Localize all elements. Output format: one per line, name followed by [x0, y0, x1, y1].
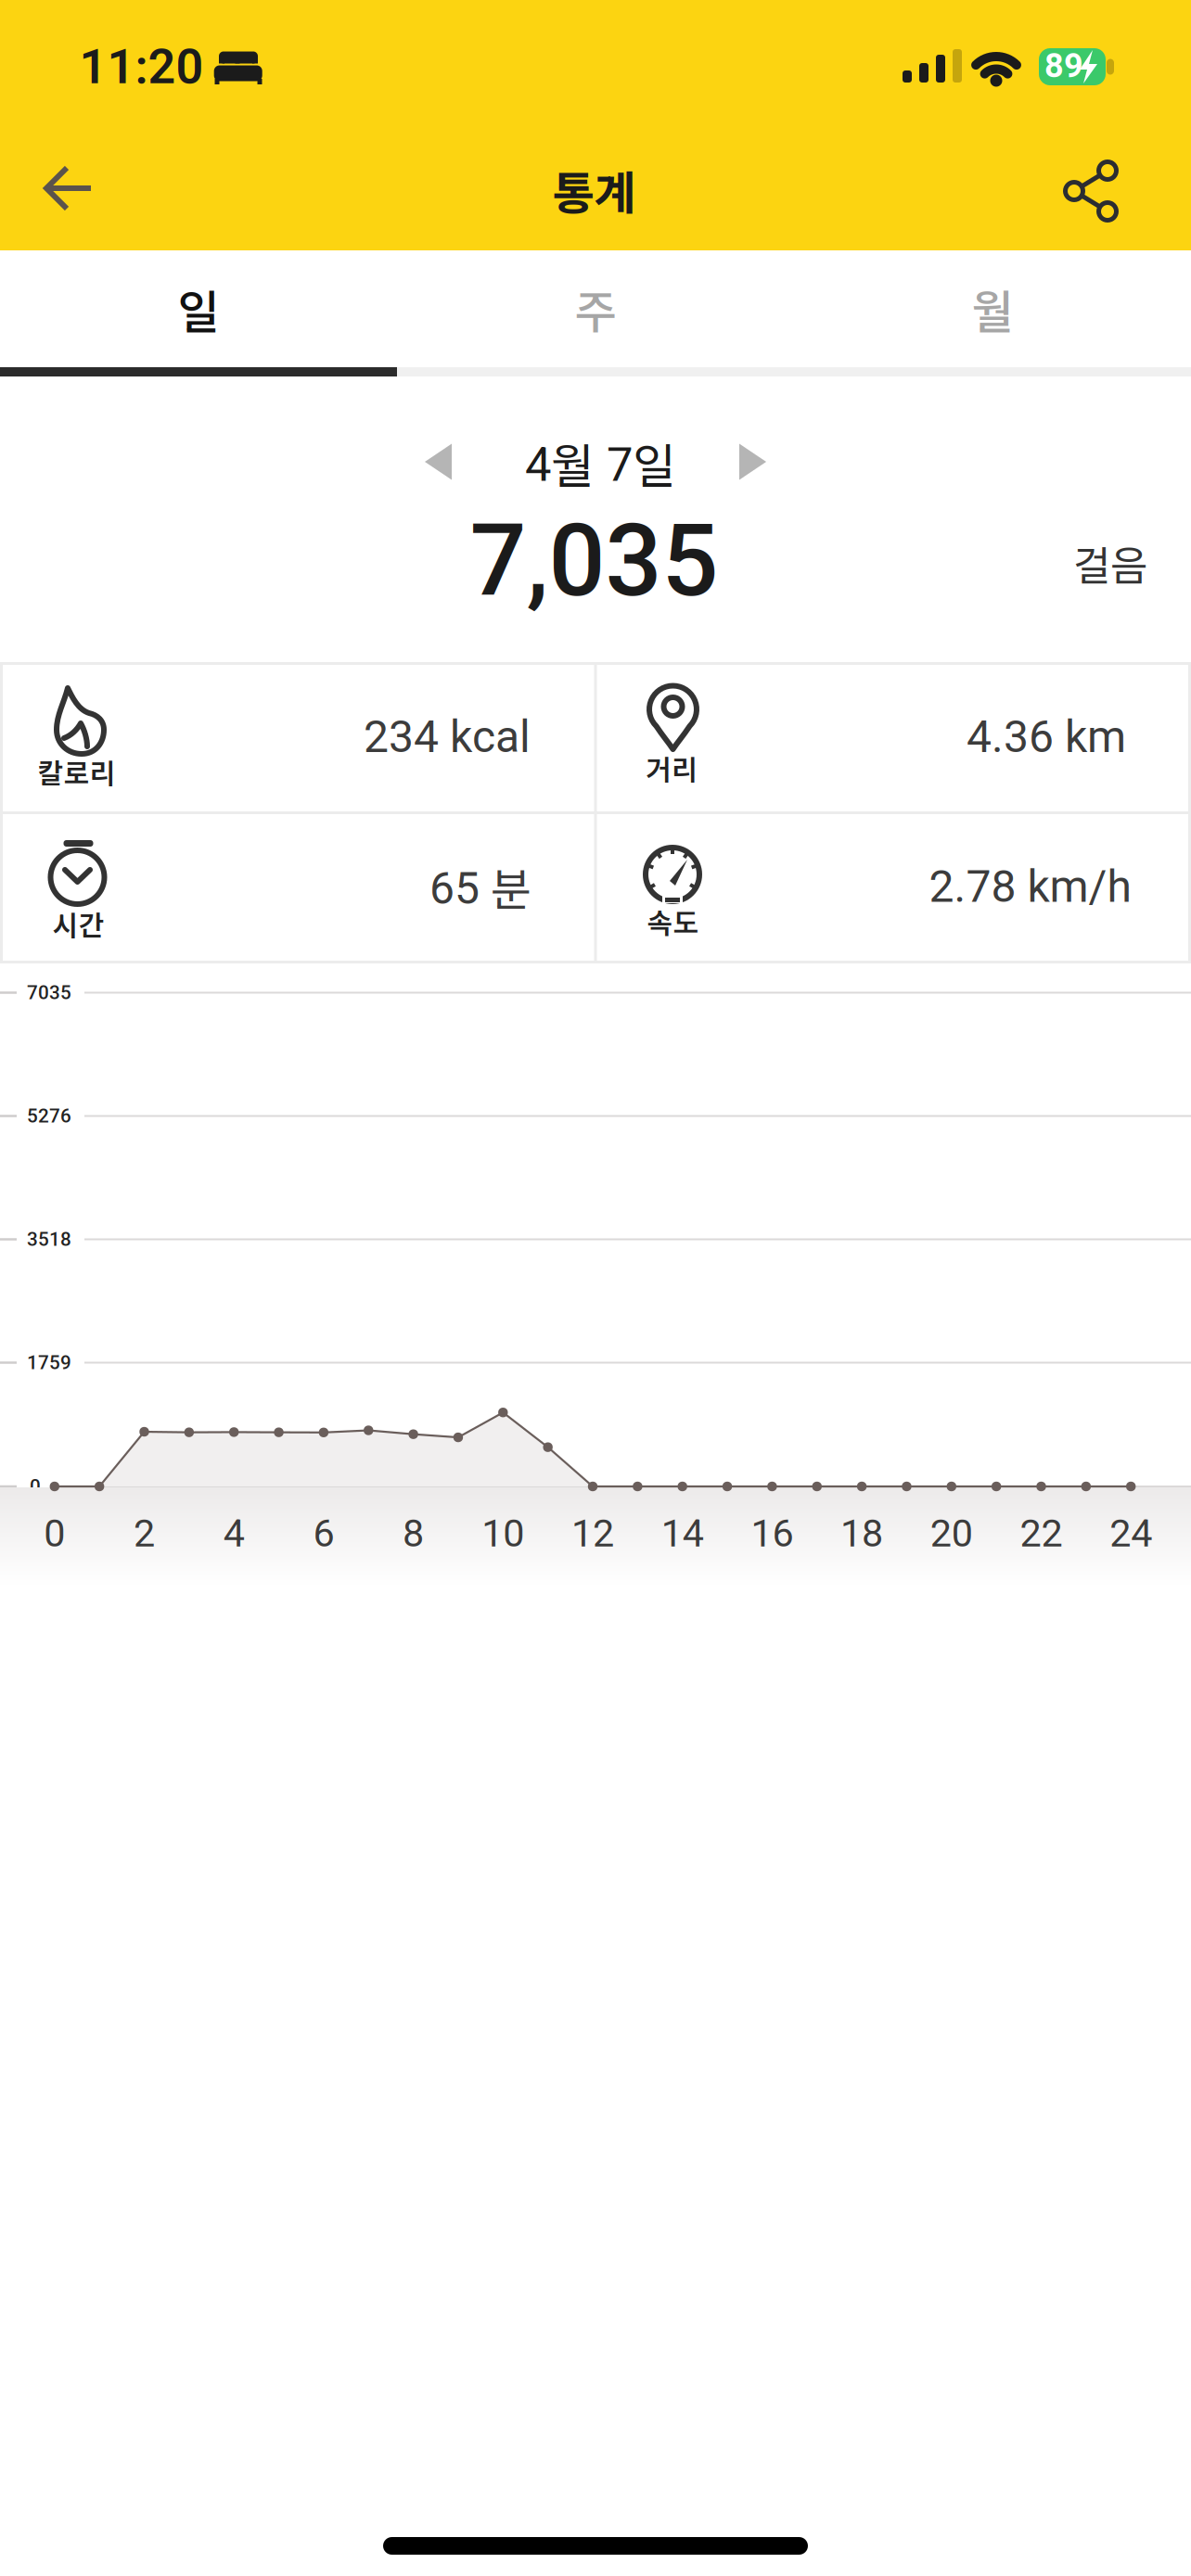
- staticText: 거리: [646, 748, 698, 788]
- staticText: 걸음: [1073, 533, 1147, 592]
- staticText: 칼로리: [38, 751, 115, 792]
- staticText: 10: [482, 1511, 524, 1556]
- staticText: 월: [972, 276, 1013, 342]
- staticText: 65 분: [429, 854, 531, 919]
- staticText: 7035: [27, 981, 71, 1004]
- staticText: 0: [30, 1475, 41, 1498]
- button[interactable]: 일: [0, 250, 397, 367]
- button[interactable]: 주: [397, 250, 794, 367]
- staticText: 20: [930, 1511, 973, 1556]
- staticText: 2.78 km/h: [929, 860, 1131, 913]
- staticText: 12: [571, 1511, 614, 1556]
- button[interactable]: [1061, 158, 1121, 224]
- staticText: 5276: [27, 1105, 71, 1127]
- staticText: 7,035: [470, 503, 718, 619]
- staticText: 8: [403, 1511, 424, 1556]
- staticText: 14: [661, 1511, 704, 1556]
- staticText: 0: [44, 1511, 65, 1556]
- staticText: 주: [575, 276, 616, 342]
- button[interactable]: [727, 434, 777, 491]
- staticText: 시간: [52, 903, 104, 944]
- staticText: 통계: [552, 157, 636, 223]
- button[interactable]: 월: [794, 250, 1191, 367]
- staticText: 일: [178, 276, 219, 342]
- staticText: 속도: [647, 901, 699, 941]
- staticText: 4월 7일: [525, 429, 676, 497]
- staticText: 22: [1020, 1511, 1063, 1556]
- staticText: 3518: [27, 1228, 71, 1251]
- staticText: 6: [313, 1511, 334, 1556]
- button[interactable]: [414, 434, 464, 491]
- staticText: 4: [223, 1511, 245, 1556]
- button[interactable]: [37, 159, 100, 218]
- staticText: 16: [751, 1511, 793, 1556]
- staticText: 1759: [27, 1351, 71, 1374]
- staticText: 89: [1044, 46, 1083, 85]
- staticText: 24: [1110, 1511, 1152, 1556]
- staticText: 4.36 km: [967, 711, 1126, 763]
- staticText: 234 kcal: [364, 711, 531, 763]
- staticText: 18: [840, 1511, 883, 1556]
- staticText: 2: [134, 1511, 155, 1556]
- staticText: 11:20: [79, 38, 204, 95]
